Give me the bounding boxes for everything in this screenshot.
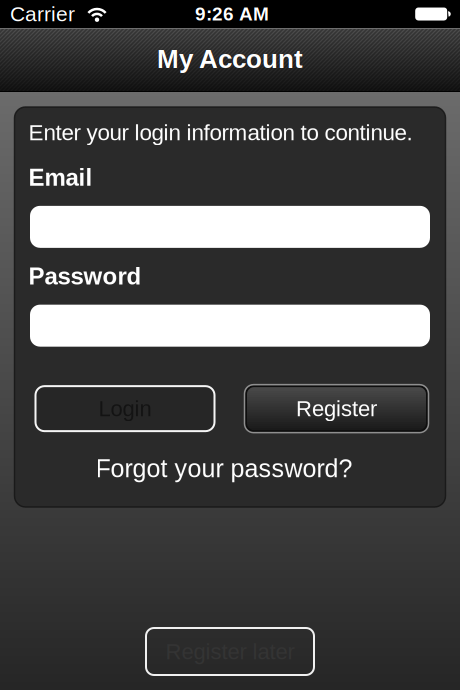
staticText: Password [28,263,141,290]
staticText: Login [98,396,151,421]
button[interactable]: Password [28,305,431,347]
staticText: Email [28,164,92,191]
staticText: My Account [157,44,303,73]
button[interactable]: Register [244,385,428,433]
button[interactable]: Register later [146,628,314,675]
staticText: Register [296,396,377,421]
button[interactable]: Login [35,386,214,431]
button[interactable]: Email [28,206,431,248]
staticText: 9:26 AM [195,3,269,25]
button[interactable]: Forgot your password? [101,455,358,482]
staticText: Forgot your password? [95,455,352,482]
staticText: Register later [165,639,294,664]
staticText: Carrier [10,2,75,26]
staticText: Enter your login information to continue… [28,120,412,145]
